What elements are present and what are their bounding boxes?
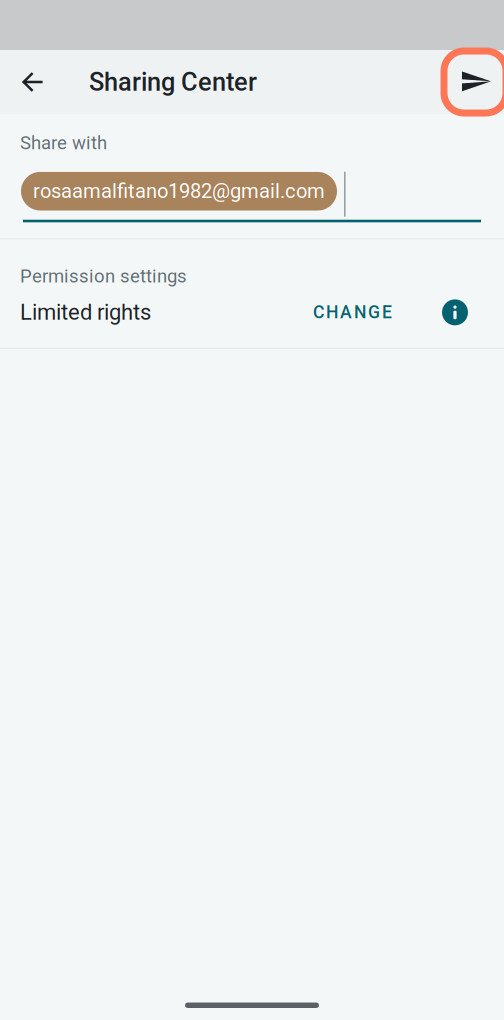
button[interactable]: C H A N G E bbox=[299, 293, 406, 332]
staticText: Permission settings bbox=[20, 265, 187, 287]
staticText: rosaamalfitano1982@gmail.com bbox=[33, 179, 325, 203]
staticText: Sharing Center bbox=[89, 67, 257, 97]
staticText: Limited rights bbox=[20, 299, 151, 325]
staticText: Share with bbox=[20, 132, 107, 154]
button[interactable]: Back bbox=[0, 50, 54, 114]
button[interactable]: Send bbox=[437, 51, 499, 113]
button[interactable]: More information bbox=[424, 299, 486, 325]
staticText: C H A N G E bbox=[313, 302, 392, 323]
